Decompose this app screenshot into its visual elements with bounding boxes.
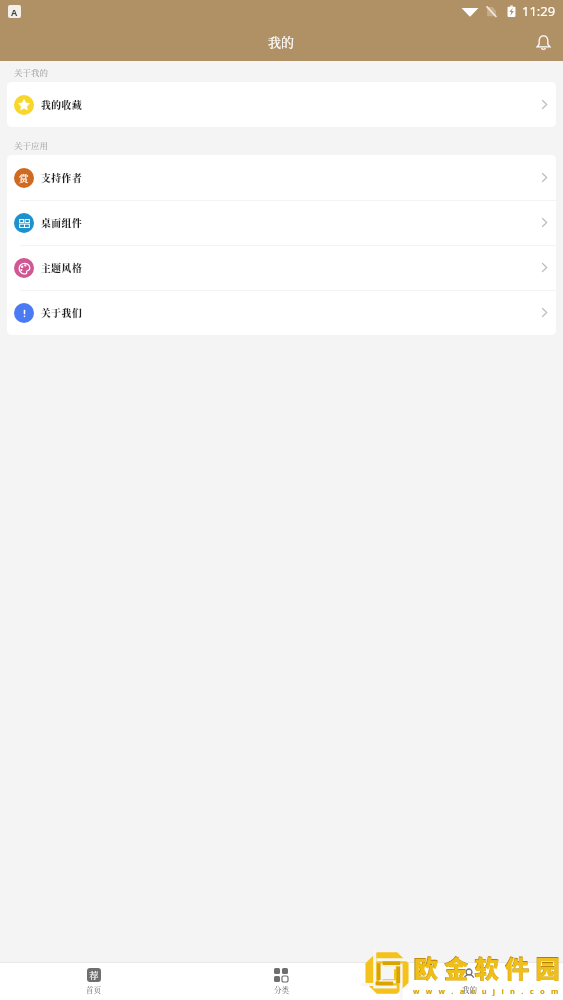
staticText: w w w . a o u j i n . c o m — [413, 986, 561, 996]
staticText: A — [11, 6, 18, 18]
staticText: 支持作者 — [41, 171, 83, 185]
staticText: 欧金软件园 — [413, 949, 563, 985]
button[interactable]: 关于我们 — [7, 290, 556, 335]
staticText: 关于我的 — [14, 66, 49, 78]
staticText: 桌面组件 — [41, 216, 83, 230]
button[interactable]: Notifications — [529, 28, 557, 56]
staticText: 关于应用 — [14, 139, 49, 151]
staticText: 我的 — [268, 32, 295, 51]
button[interactable]: 我的 — [375, 963, 563, 1000]
staticText: 我的 — [462, 984, 477, 995]
button[interactable]: 主题风格 — [7, 245, 556, 290]
button[interactable]: 赏 — [7, 155, 556, 200]
button[interactable]: 分类 — [187, 963, 375, 1000]
staticText: 首页 — [86, 984, 101, 995]
staticText: 荐 — [89, 968, 99, 982]
staticText: 关于我们 — [41, 306, 83, 320]
staticText: 欧金软件园 — [414, 950, 563, 985]
staticText: 赏 — [19, 171, 29, 185]
staticText: 分类 — [274, 984, 289, 995]
staticText: 11:29 — [522, 2, 556, 20]
button[interactable]: 我的收藏 — [7, 82, 556, 127]
staticText: 我的收藏 — [41, 98, 83, 112]
button[interactable]: 桌面组件 — [7, 200, 556, 245]
button[interactable]: 荐 — [0, 963, 187, 1000]
staticText: 主题风格 — [41, 261, 83, 275]
